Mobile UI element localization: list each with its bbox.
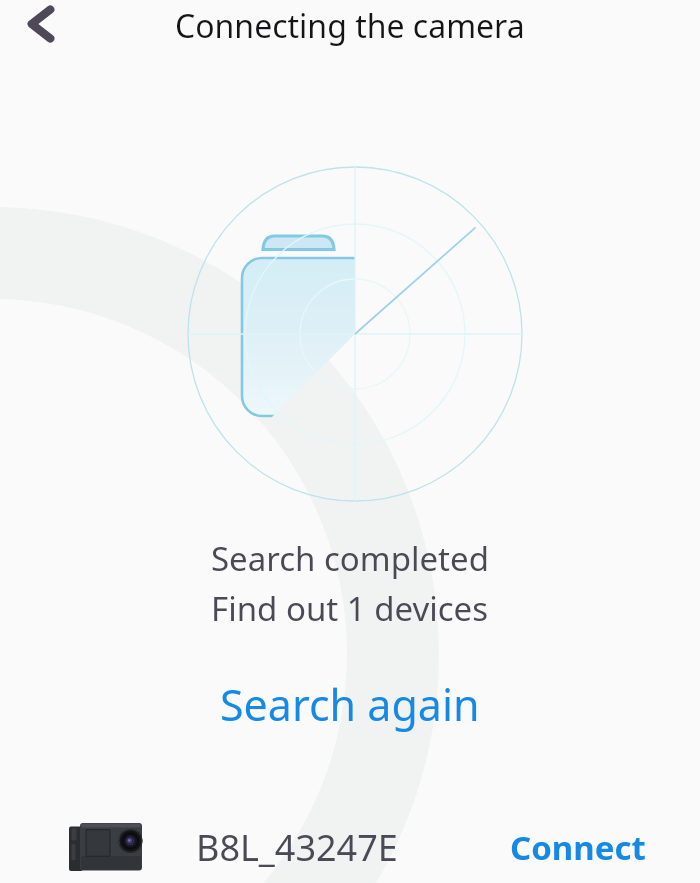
staticText: Connecting the camera xyxy=(175,4,525,48)
staticText: Find out 1 devices xyxy=(211,586,489,631)
button[interactable]: B8L_43247E xyxy=(0,811,496,883)
staticText: Connect xyxy=(510,825,646,870)
staticText: Search completed xyxy=(211,536,489,581)
button[interactable]: Back xyxy=(10,0,72,55)
staticText: B8L_43247E xyxy=(196,823,398,872)
button[interactable]: Search again xyxy=(206,669,494,740)
staticText: Search again xyxy=(220,675,480,734)
button[interactable]: Connect xyxy=(496,811,660,883)
